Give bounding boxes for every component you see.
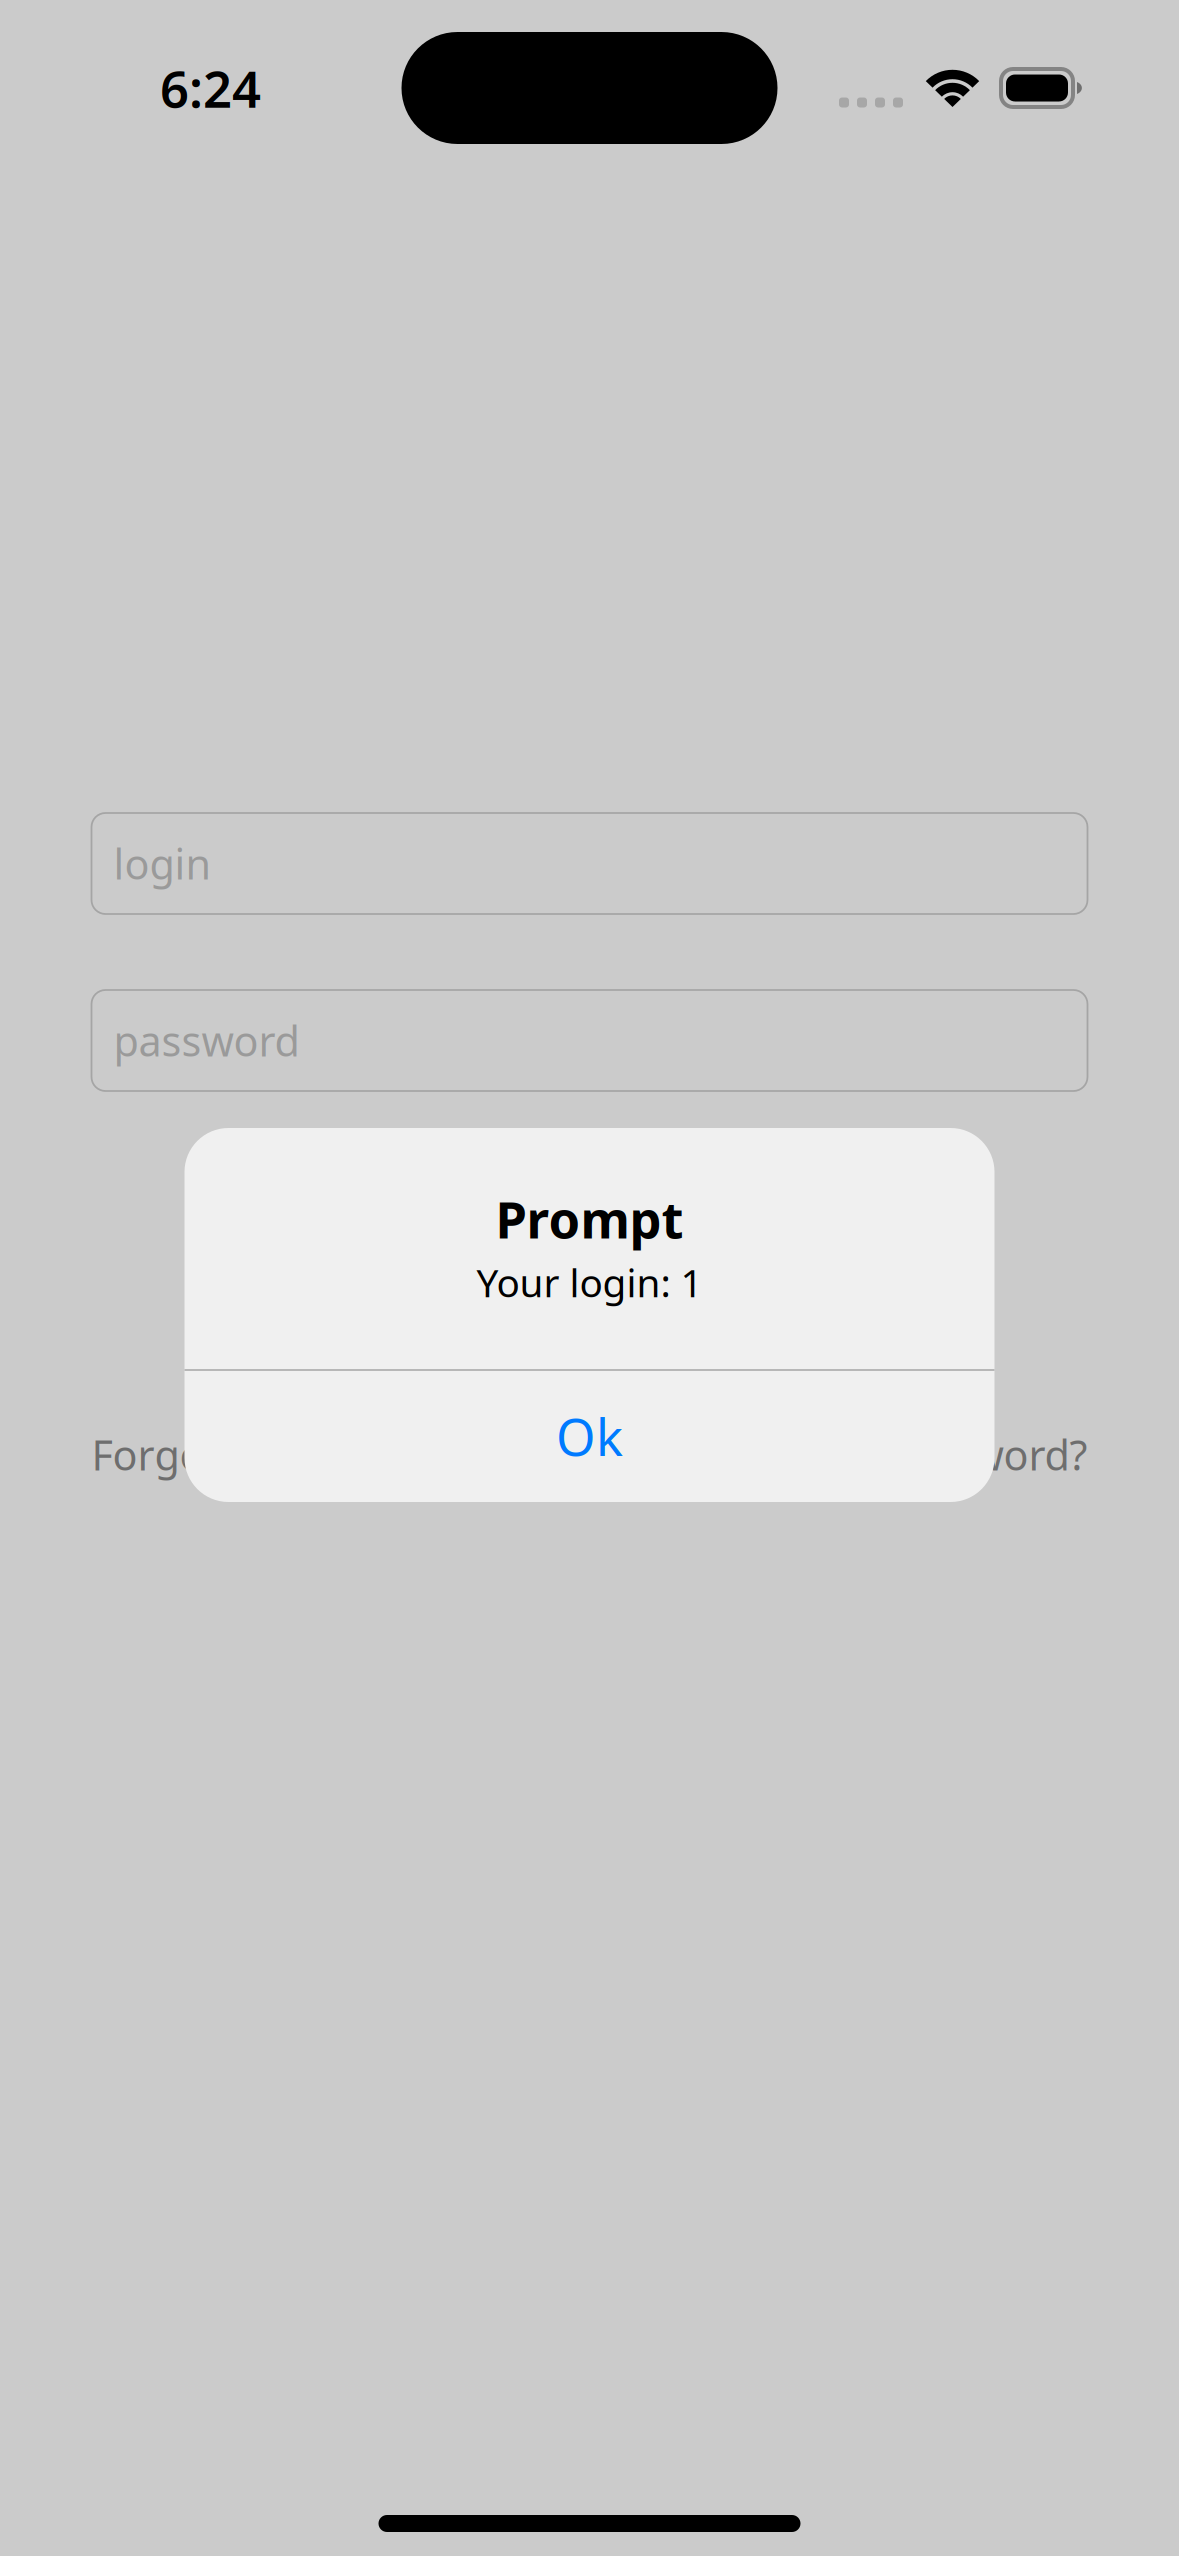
staticText: Forgot login? (91, 1427, 346, 1482)
staticText: Ok (556, 1403, 623, 1470)
button[interactable]: login (91, 813, 1087, 914)
staticText: Your login: 1 (476, 1256, 702, 1308)
staticText: password (113, 1013, 299, 1068)
staticText: Forgot password? (744, 1427, 1087, 1482)
staticText: login (113, 836, 211, 891)
button[interactable]: Forgot password? (744, 1427, 1087, 1482)
staticText: 6:24 (160, 54, 261, 122)
button[interactable]: Forgot login? (91, 1427, 346, 1482)
button[interactable]: Ok (184, 1371, 994, 1502)
staticText: Prompt (495, 1185, 683, 1252)
button[interactable]: password (91, 990, 1087, 1091)
